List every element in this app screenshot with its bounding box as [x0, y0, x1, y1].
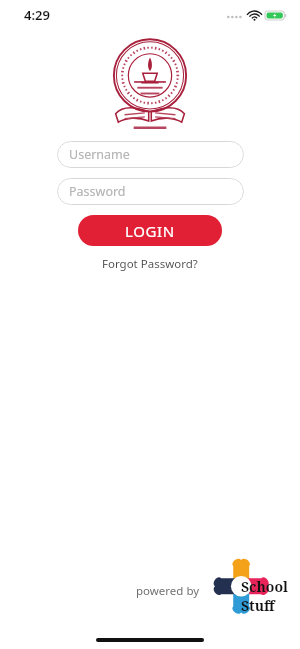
staticText: LOGIN [125, 221, 175, 241]
staticText: powered by [136, 583, 200, 599]
button[interactable]: Password [57, 178, 244, 205]
staticText: 4:29 [24, 6, 50, 24]
staticText: Username [69, 146, 130, 163]
button[interactable]: Forgot Password? [96, 254, 204, 274]
staticText: Password [69, 183, 126, 200]
staticText: School [241, 577, 288, 596]
staticText: Forgot Password? [102, 256, 198, 272]
button[interactable]: LOGIN [78, 215, 222, 246]
staticText: Stuff [241, 596, 275, 615]
button[interactable]: Username [57, 141, 244, 168]
